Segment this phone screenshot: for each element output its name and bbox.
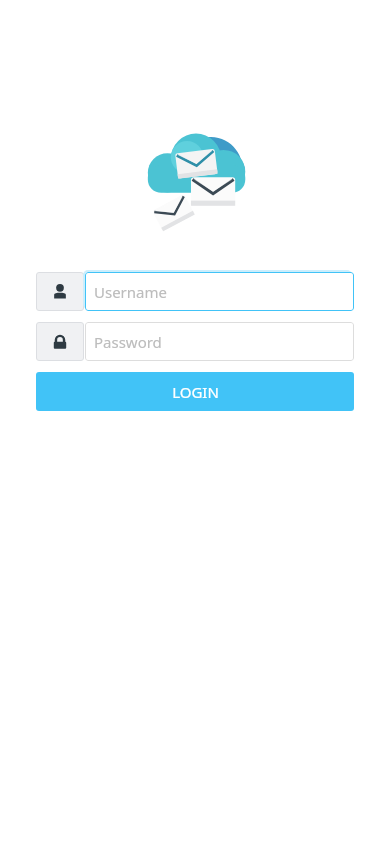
button[interactable]: Password [36, 322, 354, 361]
other: Password [36, 322, 84, 361]
button[interactable]: LOGIN [36, 372, 354, 411]
staticText: Username [94, 282, 167, 302]
button[interactable]: Username [36, 272, 354, 311]
other: Username [36, 272, 84, 311]
staticText: LOGIN [172, 382, 219, 402]
staticText: Password [94, 332, 162, 352]
